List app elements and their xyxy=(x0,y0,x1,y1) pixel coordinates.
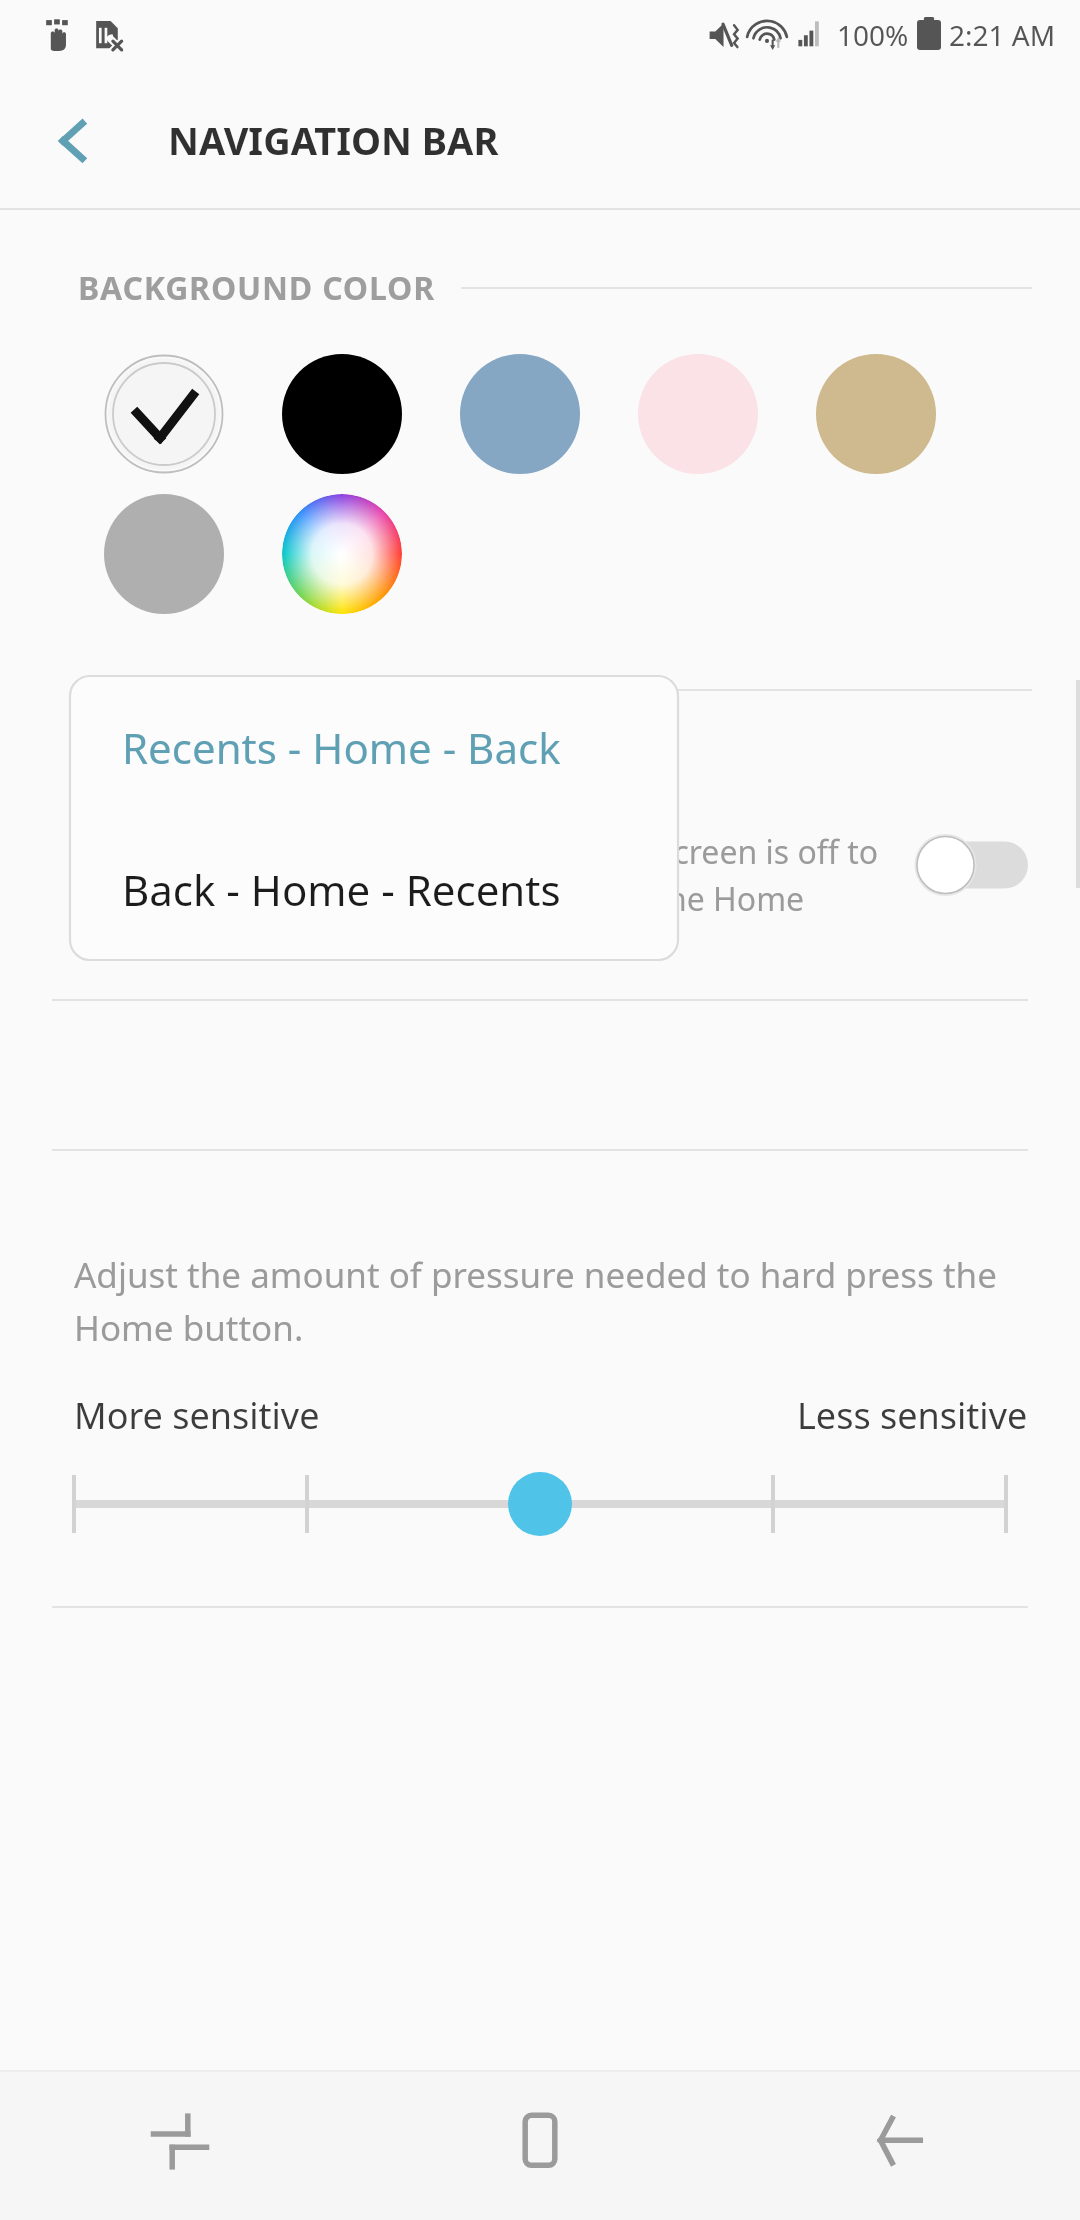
button[interactable]: Color option xyxy=(638,354,758,474)
button[interactable]: Back xyxy=(36,102,112,178)
button[interactable]: Selected color white xyxy=(104,354,224,474)
button[interactable]: Color option xyxy=(282,354,402,474)
button[interactable]: Back - Home - Recents xyxy=(70,818,678,960)
button[interactable]: Recents - Home - Back xyxy=(70,676,678,818)
staticText: 2:21 AM xyxy=(949,16,1056,54)
staticText: Hard press the Home button while the scr… xyxy=(74,830,894,967)
staticText: BACKGROUND COLOR xyxy=(78,266,435,310)
staticText: More sensitive xyxy=(74,1391,320,1440)
button[interactable]: Custom color xyxy=(282,494,402,614)
staticText: Less sensitive xyxy=(797,1391,1028,1440)
button[interactable]: Recents xyxy=(0,2070,360,2220)
button[interactable]: Unlock with Home button toggle xyxy=(914,834,1028,896)
staticText: Adjust the amount of pressure needed to … xyxy=(74,1251,1028,1351)
staticText: Recents - Home - Back xyxy=(122,719,561,776)
staticText: 100% xyxy=(837,16,909,54)
staticText: Back - Home - Recents xyxy=(122,861,561,918)
button[interactable]: Unlock with Home button xyxy=(0,762,1080,967)
button[interactable]: Color option xyxy=(460,354,580,474)
staticText: BUTTONS xyxy=(78,668,235,712)
staticText: Unlock with Home button xyxy=(74,762,569,818)
staticText: NAVIGATION BAR xyxy=(168,114,499,166)
button[interactable]: Back xyxy=(720,2070,1080,2220)
button[interactable]: Color option xyxy=(816,354,936,474)
button[interactable]: Home xyxy=(360,2070,720,2220)
button[interactable]: Pressure sensitivity slider xyxy=(0,1460,1080,1548)
button[interactable]: Color option xyxy=(104,494,224,614)
